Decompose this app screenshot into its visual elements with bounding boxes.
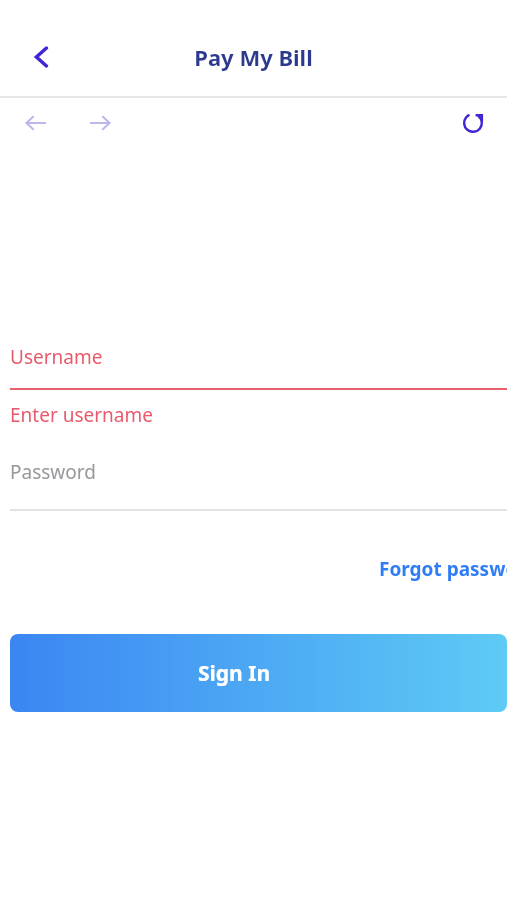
staticText: Password — [10, 459, 96, 485]
staticText: Forgot password? — [379, 556, 507, 582]
button[interactable]: Back — [14, 29, 70, 85]
button[interactable]: Sign In — [10, 634, 507, 712]
staticText: Enter username — [10, 402, 153, 428]
staticText: Sign In — [198, 659, 271, 688]
button[interactable]: Forgot password? — [379, 552, 507, 586]
staticText: Username — [10, 344, 103, 370]
button[interactable]: Reload — [449, 99, 497, 147]
button[interactable]: Back — [12, 99, 60, 147]
staticText: Pay My Bill — [194, 42, 313, 72]
button[interactable]: Forward — [76, 99, 124, 147]
